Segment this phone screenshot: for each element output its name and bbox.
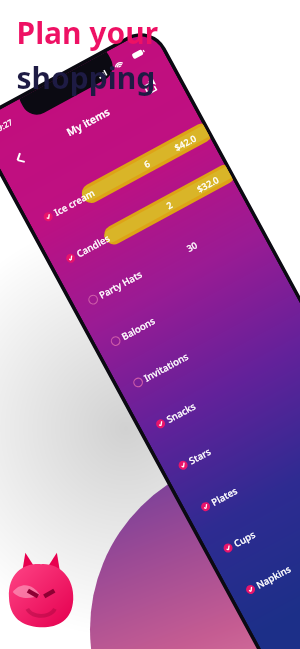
button[interactable]: Share list: [238, 166, 274, 202]
button[interactable]: App logo: [18, 568, 70, 630]
button[interactable]: Back: [42, 302, 78, 338]
